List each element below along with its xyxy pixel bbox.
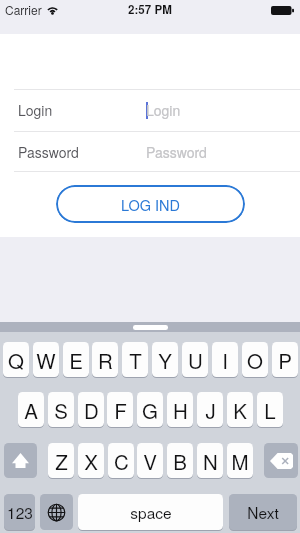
staticText: G <box>142 395 158 424</box>
staticText: X <box>84 446 98 475</box>
button[interactable]: S <box>48 392 74 427</box>
button[interactable]: Y <box>152 342 178 377</box>
staticText: N <box>203 446 218 475</box>
button[interactable]: C <box>108 443 134 478</box>
button[interactable]: X <box>78 443 104 478</box>
staticText: I <box>222 345 228 374</box>
staticText: F <box>114 395 127 424</box>
button[interactable]: L <box>257 392 283 427</box>
staticText: B <box>173 446 187 475</box>
button[interactable]: A <box>18 392 44 427</box>
button[interactable]: D <box>78 392 104 427</box>
staticText: space <box>130 501 172 523</box>
staticText: W <box>36 345 56 374</box>
button[interactable]: Password <box>0 131 300 173</box>
staticText: 123 <box>7 501 33 523</box>
staticText: K <box>233 395 247 424</box>
button[interactable]: LOG IND <box>56 185 245 223</box>
staticText: Next <box>247 501 279 523</box>
button[interactable]: R <box>92 342 118 377</box>
button[interactable]: 123 <box>4 494 35 530</box>
button[interactable]: M <box>227 443 253 478</box>
staticText: D <box>84 395 99 424</box>
button[interactable]: Next <box>229 494 297 530</box>
button[interactable]: space <box>78 494 223 530</box>
button[interactable]: U <box>182 342 208 377</box>
button[interactable]: H <box>167 392 193 427</box>
button[interactable]: Q <box>3 342 29 377</box>
staticText: S <box>54 395 68 424</box>
staticText: H <box>173 395 188 424</box>
button[interactable]: I <box>212 342 238 377</box>
staticText: A <box>24 395 38 424</box>
staticText: V <box>143 446 157 475</box>
staticText: C <box>114 446 129 475</box>
staticText: Z <box>55 446 68 475</box>
staticText: Y <box>158 345 172 374</box>
staticText: Q <box>8 345 24 374</box>
button[interactable]: Shift <box>4 443 37 478</box>
button[interactable]: Login <box>0 89 300 131</box>
staticText: Login <box>18 100 53 120</box>
button[interactable]: Backspace <box>264 443 298 478</box>
staticText: O <box>247 345 263 374</box>
staticText: R <box>98 345 113 374</box>
staticText: Password <box>146 142 207 162</box>
button[interactable]: W <box>33 342 59 377</box>
staticText: T <box>129 345 142 374</box>
staticText: J <box>205 395 216 424</box>
staticText: Password <box>18 142 79 162</box>
button[interactable]: F <box>107 392 133 427</box>
button[interactable]: G <box>137 392 163 427</box>
button[interactable]: J <box>197 392 223 427</box>
button[interactable]: O <box>242 342 268 377</box>
button[interactable]: K <box>227 392 253 427</box>
staticText: 2:57 PM <box>128 1 172 18</box>
button[interactable]: Change keyboard <box>40 494 73 530</box>
staticText: P <box>278 345 292 374</box>
staticText: E <box>69 345 83 374</box>
button[interactable]: B <box>167 443 193 478</box>
button[interactable]: Z <box>48 443 74 478</box>
staticText: Login <box>146 100 181 120</box>
button[interactable]: T <box>122 342 148 377</box>
staticText: Carrier <box>5 1 42 18</box>
button[interactable]: N <box>197 443 223 478</box>
button[interactable]: V <box>137 443 163 478</box>
button[interactable]: P <box>272 342 298 377</box>
staticText: L <box>264 395 276 424</box>
staticText: M <box>231 446 249 475</box>
staticText: LOG IND <box>121 194 181 215</box>
staticText: U <box>188 345 203 374</box>
button[interactable]: E <box>63 342 89 377</box>
